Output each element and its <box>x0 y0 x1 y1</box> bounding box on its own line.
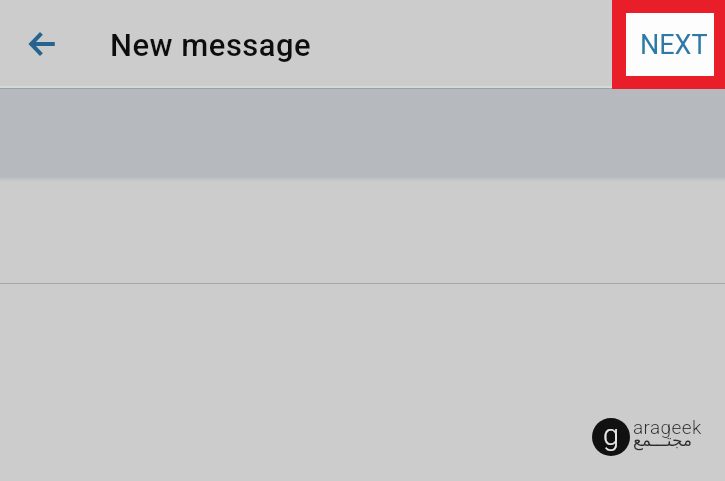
staticText: arageek <box>633 416 702 438</box>
button[interactable]: Message body <box>0 284 725 481</box>
staticText: NEXT <box>640 29 708 61</box>
button[interactable]: NEXT <box>626 13 714 76</box>
staticText: مجتـــمع <box>633 430 693 450</box>
button[interactable]: Navigate up <box>13 1 71 87</box>
staticText: New message <box>110 27 312 63</box>
staticText: g <box>603 418 620 452</box>
